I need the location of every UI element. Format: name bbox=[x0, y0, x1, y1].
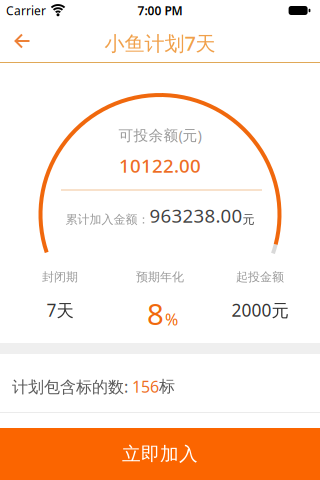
staticText: 7:00 PM bbox=[137, 2, 182, 18]
staticText: 10122.00 bbox=[119, 153, 201, 178]
staticText: 元 bbox=[242, 212, 254, 227]
staticText: 起投金额 bbox=[236, 270, 284, 284]
staticText: 7天 bbox=[46, 298, 73, 321]
staticText: 可投余额(元) bbox=[118, 125, 201, 145]
staticText: 小鱼计划7天 bbox=[104, 30, 215, 56]
staticText: 963238.00 bbox=[149, 203, 242, 228]
staticText: 标 bbox=[159, 377, 175, 396]
staticText: 封闭期 bbox=[42, 270, 78, 284]
staticText: Carrier bbox=[6, 2, 46, 18]
staticText: 计划包含标的数: bbox=[12, 376, 132, 397]
staticText: 2000元 bbox=[231, 298, 288, 321]
staticText: 预期年化 bbox=[136, 270, 184, 284]
staticText: 累计加入金额： bbox=[65, 212, 149, 227]
button[interactable]: 立即加入 bbox=[0, 428, 320, 480]
staticText: % bbox=[165, 309, 178, 330]
staticText: 156 bbox=[132, 376, 159, 397]
staticText: 立即加入 bbox=[122, 442, 198, 465]
staticText: 8 bbox=[147, 294, 164, 333]
button[interactable]: Back bbox=[0, 20, 44, 62]
